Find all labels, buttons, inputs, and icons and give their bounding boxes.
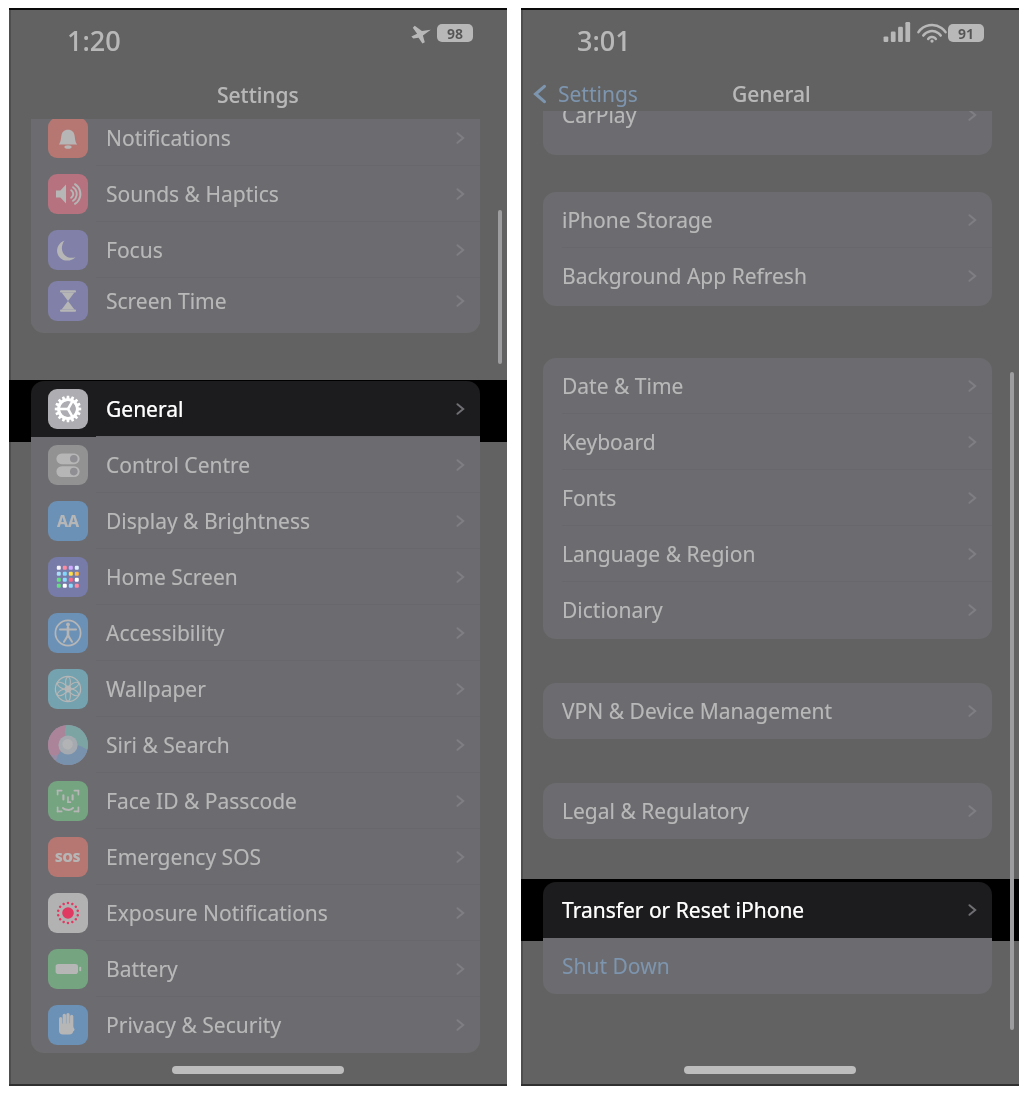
staticText: Legal & Regulatory: [562, 797, 749, 826]
staticText: Shut Down: [562, 952, 670, 981]
staticText: Dictionary: [562, 596, 663, 625]
staticText: General: [106, 395, 184, 424]
staticText: Face ID & Passcode: [106, 787, 297, 816]
staticText: iPhone Storage: [562, 206, 713, 235]
other: Wi-Fi: [919, 24, 945, 42]
button[interactable]: Background App Refresh: [543, 248, 992, 304]
button[interactable]: Transfer or Reset iPhone: [543, 882, 992, 938]
button[interactable]: Fonts: [543, 470, 992, 526]
staticText: Emergency SOS: [106, 843, 262, 872]
staticText: Accessibility: [106, 619, 225, 648]
staticText: 91: [958, 24, 975, 42]
staticText: VPN & Device Management: [562, 697, 833, 726]
staticText: Screen Time: [106, 287, 227, 316]
staticText: Wallpaper: [106, 675, 206, 704]
button[interactable]: Keyboard: [543, 414, 992, 470]
staticText: Language & Region: [562, 540, 756, 569]
staticText: Privacy & Security: [106, 1011, 282, 1040]
other: Cellular signal: [883, 22, 911, 42]
staticText: 1:20: [67, 22, 121, 59]
staticText: Siri & Search: [106, 731, 230, 760]
staticText: Focus: [106, 236, 163, 265]
button[interactable]: Shut Down: [543, 938, 992, 994]
staticText: General: [732, 80, 811, 109]
staticText: 3:01: [577, 22, 631, 59]
staticText: Notifications: [106, 124, 231, 153]
staticText: Keyboard: [562, 428, 656, 457]
staticText: Sounds & Haptics: [106, 180, 279, 209]
button[interactable]: VPN & Device Management: [543, 683, 992, 739]
staticText: Fonts: [562, 484, 617, 513]
staticText: Control Centre: [106, 451, 251, 480]
button[interactable]: Screen Time: [31, 278, 480, 324]
staticText: CarPlay: [562, 111, 637, 130]
staticText: Transfer or Reset iPhone: [562, 896, 805, 925]
button[interactable]: Siri & Search: [31, 717, 480, 773]
button[interactable]: SOS: [31, 829, 480, 885]
button[interactable]: Home Screen: [31, 549, 480, 605]
button[interactable]: Privacy & Security: [31, 997, 480, 1053]
button[interactable]: Settings: [526, 72, 642, 116]
button[interactable]: Focus: [31, 222, 480, 278]
button[interactable]: Battery: [31, 941, 480, 997]
button[interactable]: General: [31, 381, 480, 437]
button[interactable]: Control Centre: [31, 437, 480, 493]
button[interactable]: Accessibility: [31, 605, 480, 661]
staticText: 98: [447, 24, 464, 42]
button[interactable]: Notifications: [31, 119, 480, 166]
button[interactable]: Legal & Regulatory: [543, 783, 992, 839]
staticText: Settings: [558, 80, 638, 109]
button[interactable]: Exposure Notifications: [31, 885, 480, 941]
button[interactable]: Language & Region: [543, 526, 992, 582]
button[interactable]: Face ID & Passcode: [31, 773, 480, 829]
staticText: Battery: [106, 955, 178, 984]
button[interactable]: Date & Time: [543, 358, 992, 414]
button[interactable]: iPhone Storage: [543, 192, 992, 248]
button[interactable]: CarPlay: [543, 111, 992, 137]
staticText: SOS: [55, 848, 81, 866]
button[interactable]: AA: [31, 493, 480, 549]
staticText: AA: [57, 510, 80, 532]
button[interactable]: Dictionary: [543, 582, 992, 638]
staticText: Exposure Notifications: [106, 899, 328, 928]
button[interactable]: Sounds & Haptics: [31, 166, 480, 222]
staticText: Date & Time: [562, 372, 684, 401]
staticText: Background App Refresh: [562, 262, 807, 291]
other: Airplane mode: [408, 23, 432, 47]
staticText: Display & Brightness: [106, 507, 311, 536]
staticText: Settings: [217, 81, 299, 110]
staticText: Home Screen: [106, 563, 238, 592]
button[interactable]: Wallpaper: [31, 661, 480, 717]
